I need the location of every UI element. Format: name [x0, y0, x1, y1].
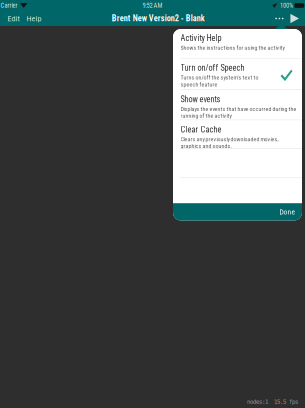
button[interactable]: Help: [25, 11, 43, 26]
staticText: Help: [26, 14, 41, 23]
button[interactable]: Edit: [6, 11, 21, 26]
staticText: Shows the instructions for using the act…: [180, 44, 284, 51]
staticText: Edit: [7, 14, 19, 23]
button[interactable]: Done: [173, 203, 302, 221]
staticText: nodes:1 15.5 fps: [247, 398, 298, 405]
staticText: Done: [279, 208, 295, 216]
staticText: Show events: [180, 95, 220, 104]
staticText: 9:52 AM: [142, 2, 162, 9]
staticText: 100%: [280, 2, 293, 9]
staticText: Turns on/off the system's text to speech…: [180, 74, 258, 88]
button[interactable]: Show events: [173, 90, 302, 120]
button[interactable]: Play: [288, 12, 301, 25]
staticText: Brent New Version2 - Blank: [112, 14, 205, 23]
staticText: Turn on/off Speech: [180, 63, 244, 73]
staticText: Carrier: [0, 2, 17, 9]
button[interactable]: Activity Help: [173, 29, 302, 58]
button[interactable]: More options: [273, 12, 285, 25]
staticText: Displays the events that have occurred d…: [180, 105, 296, 119]
staticText: Clear Cache: [180, 125, 221, 135]
button[interactable]: Turn on/off Speech: [173, 59, 302, 89]
staticText: Activity Help: [180, 33, 221, 43]
button[interactable]: Clear Cache: [173, 120, 302, 148]
staticText: Clears any previously downloaded movies,…: [180, 136, 278, 150]
